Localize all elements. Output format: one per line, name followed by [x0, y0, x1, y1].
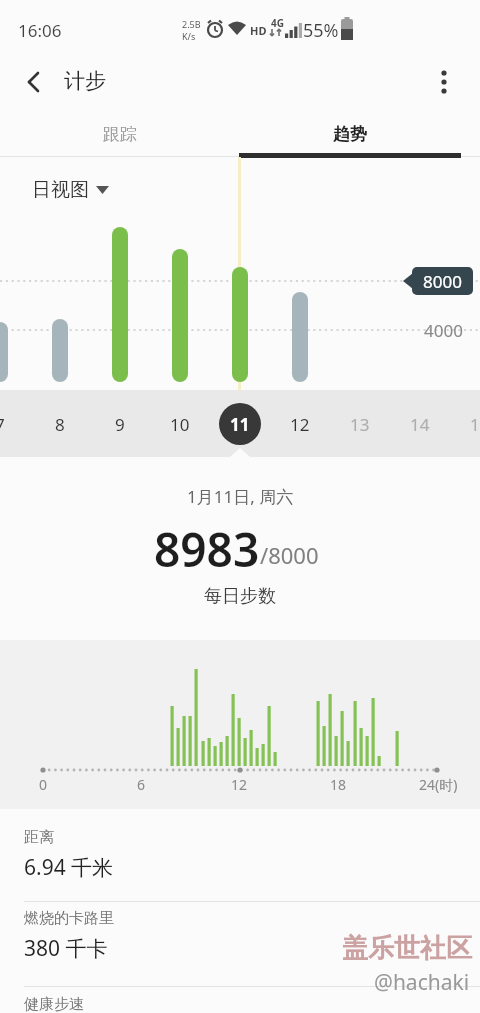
staticText: 15 [470, 413, 480, 436]
staticText: 13 [350, 413, 370, 436]
button[interactable]: 13 [336, 400, 384, 448]
staticText: 趋势 [333, 124, 367, 145]
staticText: 8983 [154, 518, 260, 576]
staticText: 14 [410, 413, 430, 436]
staticText: 0 [39, 775, 48, 793]
staticText: 6.94 千米 [24, 853, 114, 882]
staticText: 9 [115, 413, 125, 436]
button[interactable]: 燃烧的卡路里 [0, 902, 480, 986]
staticText: 10 [170, 413, 190, 436]
staticText: 计步 [64, 68, 106, 94]
button[interactable]: 跟踪 [0, 112, 240, 157]
staticText: 距离 [24, 828, 54, 847]
staticText: 1月11日, 周六 [187, 485, 294, 508]
button[interactable]: 12 [276, 400, 324, 448]
staticText: @hachaki [374, 968, 470, 997]
staticText: 380 千卡 [24, 934, 108, 963]
staticText: 11 [230, 413, 250, 436]
button[interactable]: 15 [456, 400, 480, 448]
staticText: 跟踪 [103, 124, 137, 145]
staticText: 8000 [423, 270, 462, 293]
staticText: 55% [303, 18, 339, 42]
staticText: 7 [0, 413, 5, 436]
button[interactable]: 趋势 [240, 112, 460, 157]
staticText: 健康步速 [24, 995, 84, 1013]
staticText: /8000 [260, 540, 319, 570]
staticText: 8 [55, 413, 65, 436]
button[interactable]: 11 [219, 403, 261, 445]
staticText: HD [250, 23, 267, 38]
button[interactable] [14, 62, 54, 102]
staticText: 12 [231, 775, 248, 793]
button[interactable]: 日视图 [24, 172, 117, 208]
staticText: 盖乐世社区 [342, 932, 472, 965]
staticText: 24(时) [419, 775, 458, 793]
staticText: 16:06 [18, 19, 62, 42]
button[interactable]: 7 [0, 400, 24, 448]
staticText: 燃烧的卡路里 [24, 909, 114, 928]
button[interactable]: 14 [396, 400, 444, 448]
staticText: 每日步数 [204, 585, 276, 608]
staticText: 6 [137, 775, 146, 793]
button[interactable]: 10 [156, 400, 204, 448]
button[interactable]: 健康步速 [0, 987, 480, 1013]
staticText: 4000 [424, 319, 463, 342]
staticText: 日视图 [32, 178, 89, 202]
staticText: 2.5B K/s [182, 18, 201, 42]
button[interactable]: 8 [36, 400, 84, 448]
button[interactable]: 9 [96, 400, 144, 448]
button[interactable] [424, 62, 464, 102]
staticText: 4G [271, 16, 284, 29]
staticText: 18 [330, 775, 347, 793]
button[interactable]: 距离 [0, 809, 480, 901]
staticText: 12 [290, 413, 310, 436]
